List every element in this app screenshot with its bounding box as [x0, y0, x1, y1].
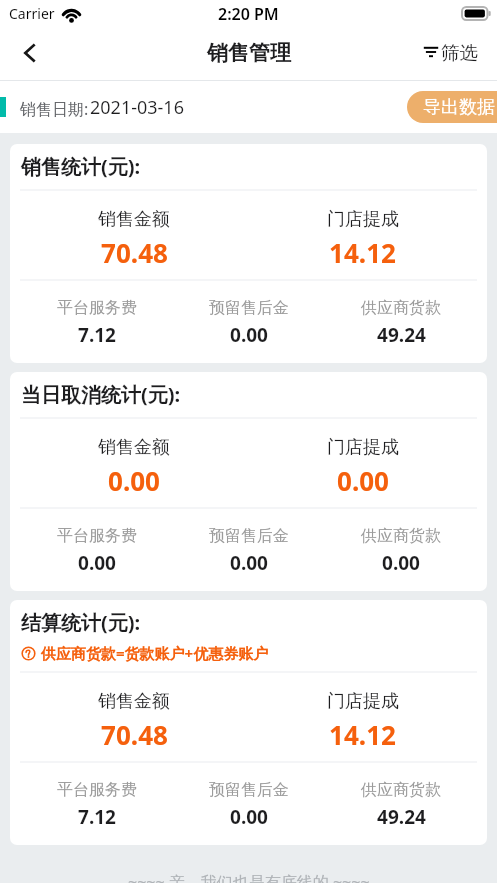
staticText: 70.48 [101, 717, 168, 752]
staticText: ~~~~ 亲，我们也是有底线的 ~~~~ [128, 871, 370, 883]
staticText: 0.00 [337, 463, 389, 498]
staticText: 49.24 [377, 804, 426, 830]
staticText: Carrier [9, 4, 55, 23]
staticText: 70.48 [101, 235, 168, 270]
staticText: 门店提成 [327, 690, 399, 713]
staticText: 销售统计(元): [21, 153, 141, 180]
staticText: 当日取消统计(元): [21, 381, 181, 408]
staticText: 销售日期: [20, 98, 89, 120]
staticText: 筛选 [441, 41, 478, 64]
staticText: 0.00 [78, 550, 116, 576]
button[interactable]: 导出数据 [407, 91, 497, 123]
staticText: 49.24 [377, 322, 426, 348]
staticText: 销售金额 [98, 690, 170, 713]
staticText: 平台服务费 [57, 780, 137, 800]
staticText: 预留售后金 [209, 780, 289, 800]
staticText: 导出数据 [423, 96, 495, 119]
staticText: 销售金额 [98, 436, 170, 459]
staticText: 0.00 [230, 804, 268, 830]
staticText: 平台服务费 [57, 526, 137, 546]
staticText: 供应商货款 [361, 780, 441, 800]
staticText: 14.12 [329, 235, 396, 270]
staticText: 0.00 [108, 463, 160, 498]
staticText: 供应商货款 [361, 298, 441, 318]
button[interactable]: Back [3, 31, 55, 75]
staticText: 预留售后金 [209, 298, 289, 318]
staticText: 2021-03-16 [90, 95, 184, 120]
staticText: 供应商货款=货款账户+优惠券账户 [41, 643, 269, 663]
staticText: 销售管理 [207, 40, 291, 66]
staticText: 销售金额 [98, 208, 170, 231]
staticText: 0.00 [230, 322, 268, 348]
staticText: 预留售后金 [209, 526, 289, 546]
button[interactable]: 筛选 [413, 31, 497, 74]
staticText: 2:20 PM [218, 3, 279, 25]
staticText: 结算统计(元): [21, 609, 141, 636]
staticText: 14.12 [329, 717, 396, 752]
staticText: 7.12 [78, 804, 116, 830]
staticText: 门店提成 [327, 436, 399, 459]
staticText: 平台服务费 [57, 298, 137, 318]
staticText: 7.12 [78, 322, 116, 348]
staticText: 门店提成 [327, 208, 399, 231]
staticText: 供应商货款 [361, 526, 441, 546]
staticText: 0.00 [230, 550, 268, 576]
staticText: 0.00 [382, 550, 420, 576]
